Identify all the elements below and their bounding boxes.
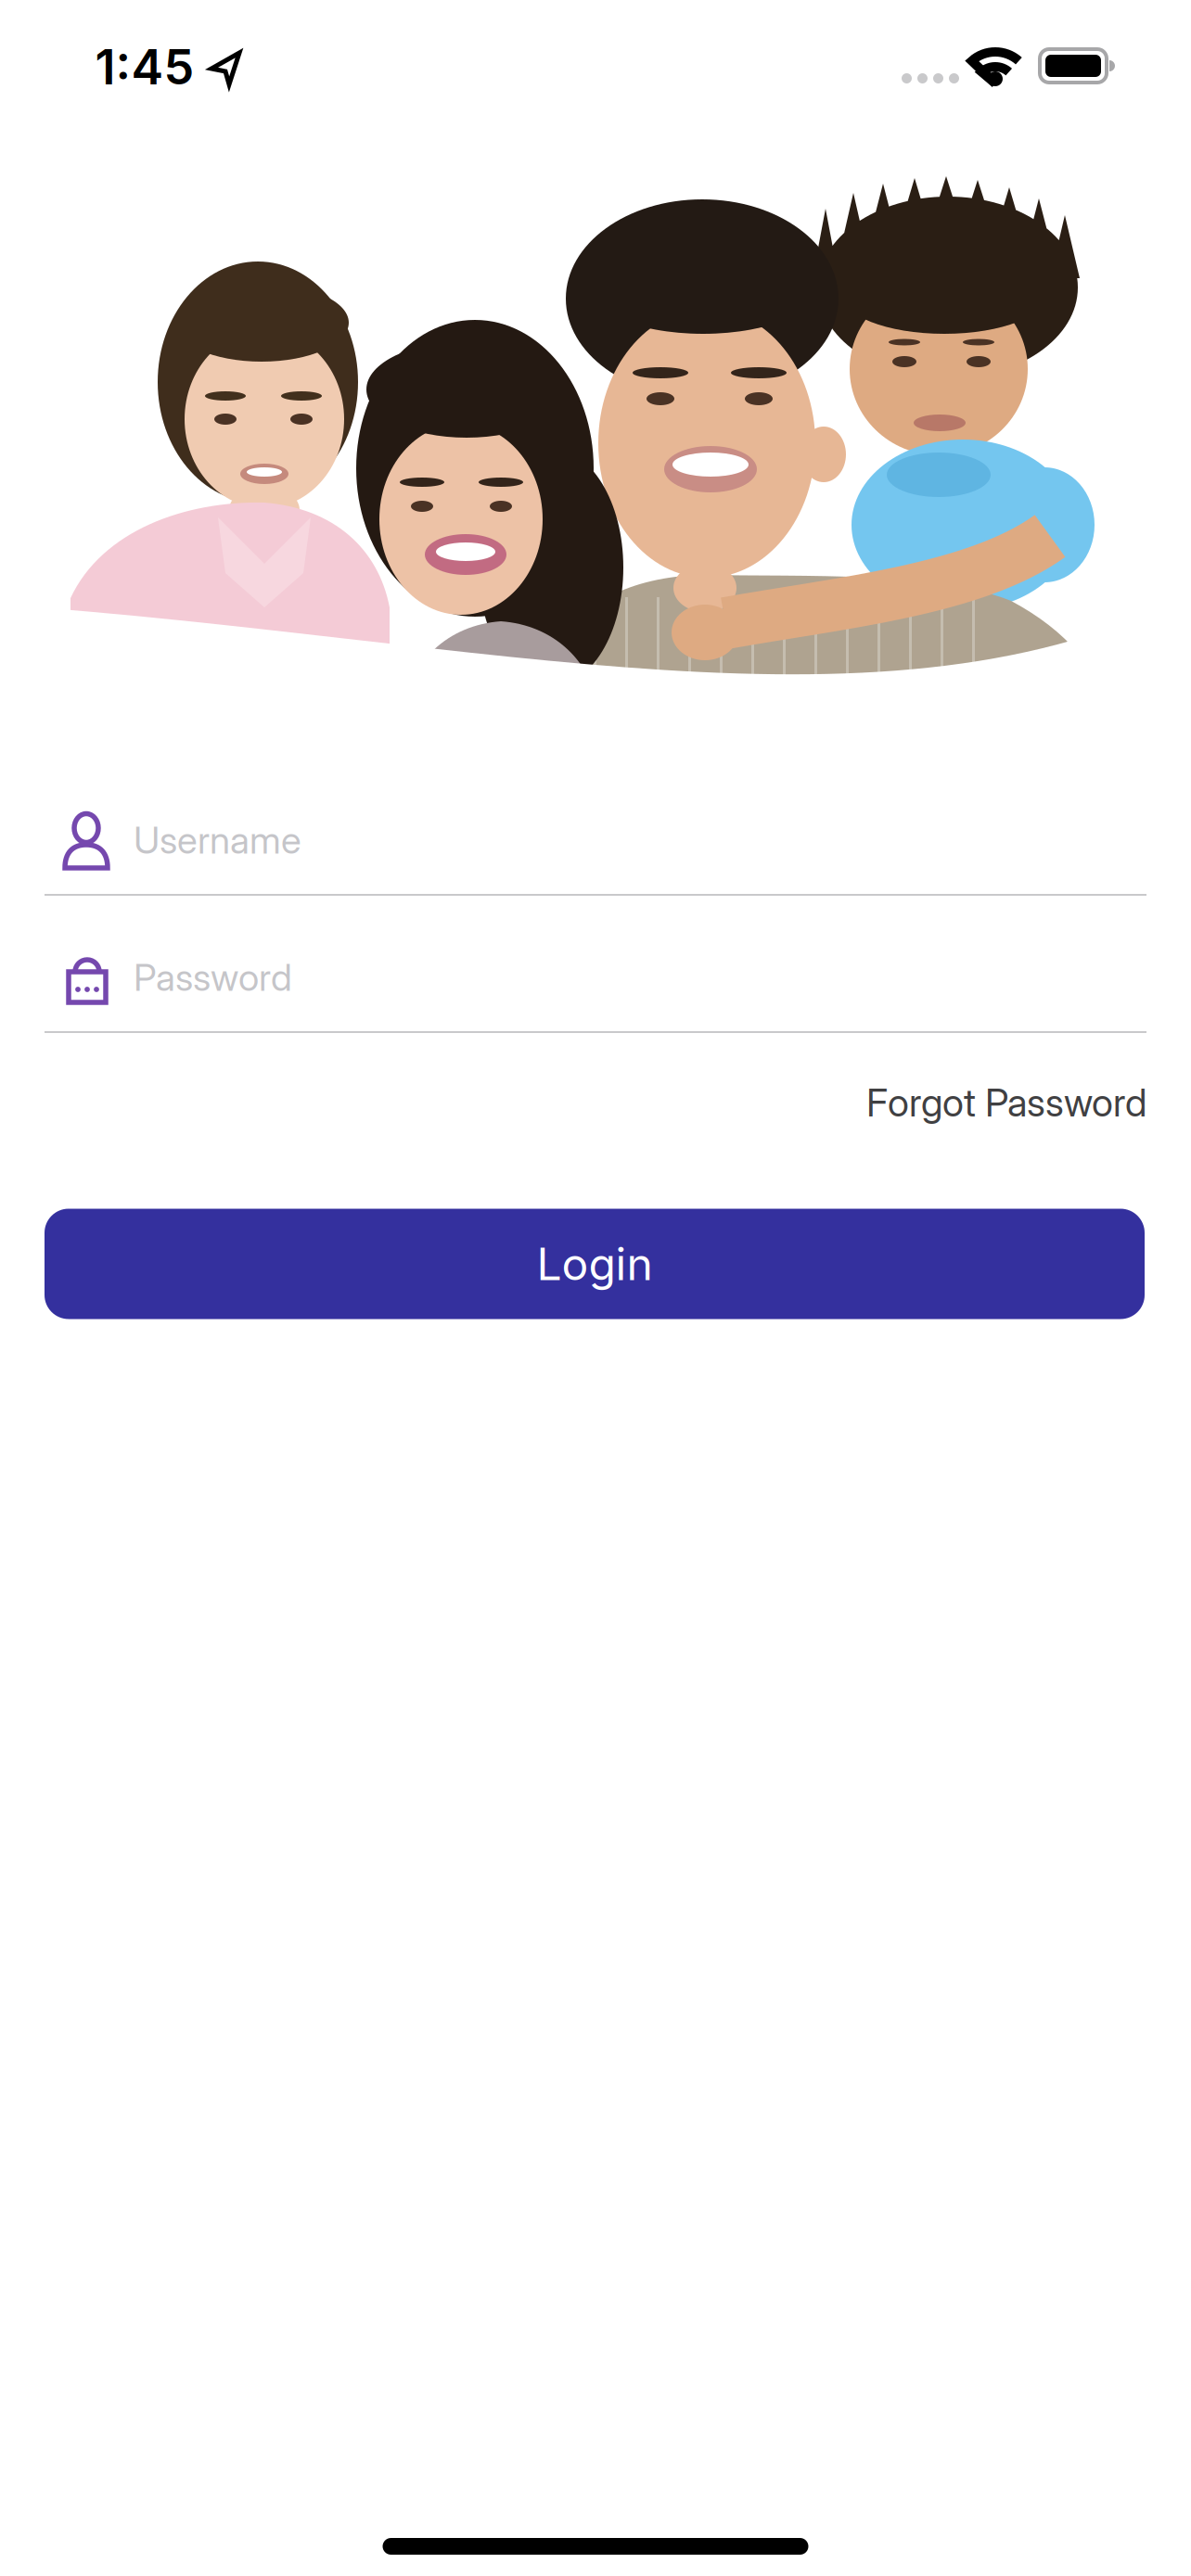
button[interactable]: Login [45,1209,1145,1319]
staticText: Username [134,818,301,862]
staticText: 1:45 [95,38,194,95]
staticText: Forgot Password [866,1080,1146,1125]
staticText: Login [537,1238,653,1290]
staticText: Password [134,955,292,999]
button[interactable]: Forgot Password [866,1080,1146,1125]
